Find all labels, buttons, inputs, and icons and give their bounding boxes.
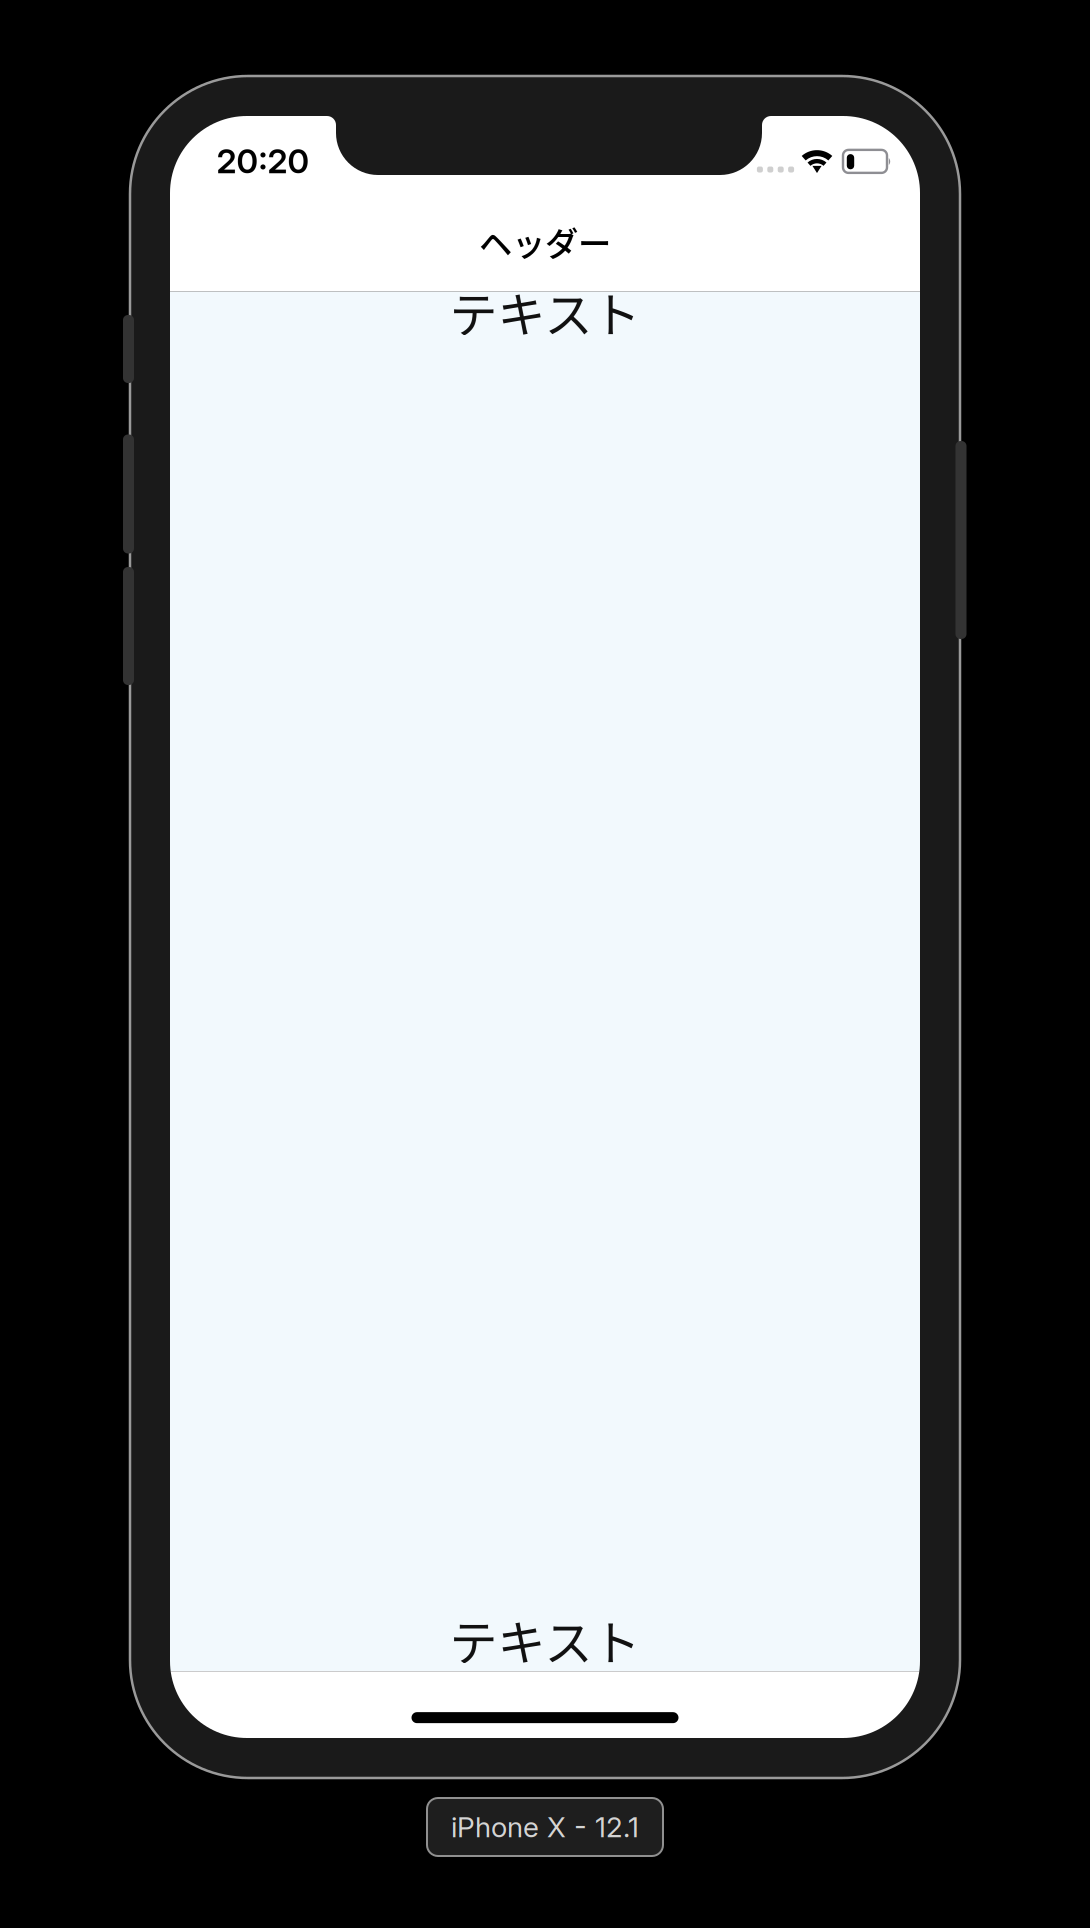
staticText: iPhone X - 12.1 (451, 1810, 639, 1844)
button[interactable]: Volume down (0, 0, 1090, 1928)
staticText: ヘッダー (479, 217, 611, 266)
button[interactable]: Ring/Silent switch (0, 0, 1090, 1928)
button[interactable]: Volume up (0, 0, 1090, 1928)
staticText: テキスト (449, 1605, 640, 1674)
button[interactable]: Side button (0, 0, 1090, 1928)
button[interactable]: ヘッダー (170, 176, 920, 291)
staticText: テキスト (449, 277, 640, 346)
staticText: 20:20 (216, 141, 309, 181)
